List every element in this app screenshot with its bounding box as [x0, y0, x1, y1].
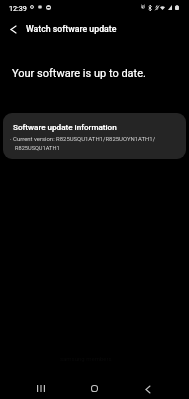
staticText: 12:39 — [9, 4, 27, 12]
button[interactable]: Software update information — [3, 113, 186, 159]
staticText: Software update information — [13, 122, 117, 131]
staticText: R825USQU1ATH1 — [15, 145, 60, 152]
button[interactable]: Home — [76, 377, 112, 399]
button[interactable]: Back — [130, 378, 166, 399]
staticText: · Current version: R825USQU1ATH1/R825UOY… — [10, 135, 156, 142]
button[interactable]: Navigate up — [0, 16, 26, 42]
staticText: Watch software update — [26, 24, 117, 34]
button[interactable]: Recent apps — [23, 377, 59, 399]
staticText: Your software is up to date. — [12, 67, 146, 80]
